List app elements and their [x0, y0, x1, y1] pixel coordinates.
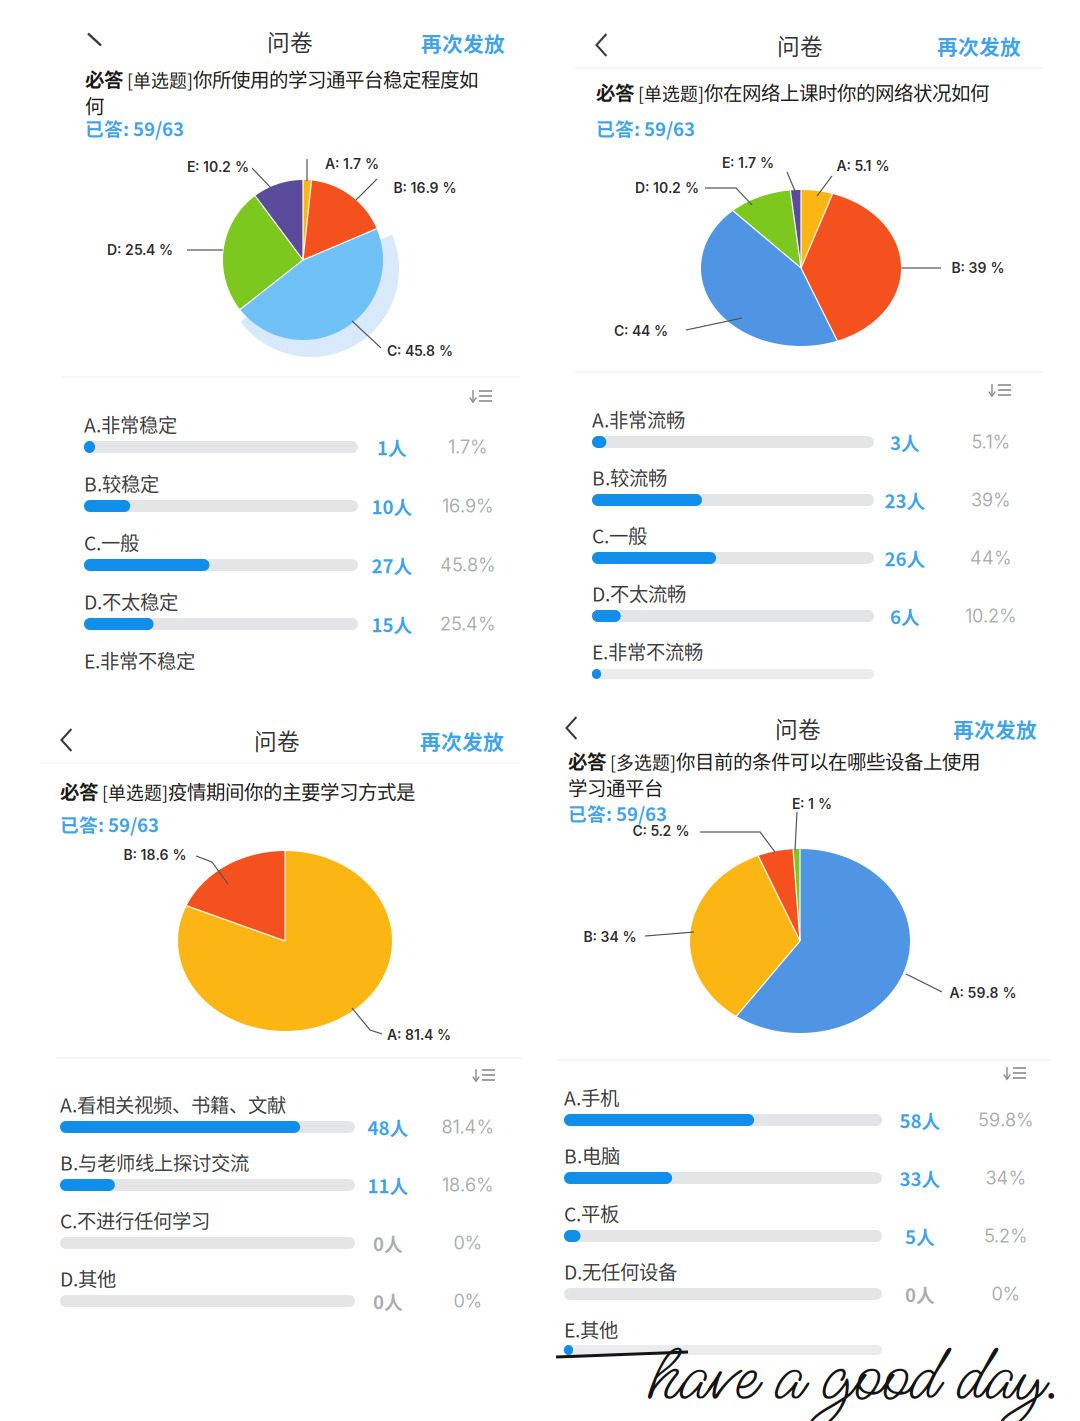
- staticText: E.非常不流畅: [592, 637, 703, 665]
- staticText: B.与老师线上探讨交流: [60, 1148, 249, 1176]
- staticText: C.一般: [84, 528, 139, 556]
- staticText: 26人: [884, 544, 925, 571]
- staticText: B: 16.9 %: [393, 179, 456, 196]
- staticText: 39%: [971, 489, 1011, 511]
- button[interactable]: Sort: [995, 1058, 1035, 1088]
- staticText: 48人: [367, 1113, 408, 1140]
- staticText: 18.6%: [442, 1174, 494, 1196]
- staticText: 45.8%: [440, 554, 496, 576]
- staticText: 33人: [899, 1164, 940, 1191]
- staticText: 34%: [985, 1167, 1026, 1189]
- staticText: 5人: [905, 1222, 935, 1249]
- staticText: 已答: 59/63: [596, 114, 695, 141]
- staticText: 44%: [970, 547, 1012, 569]
- staticText: C: 45.8 %: [387, 342, 453, 359]
- staticText: A.非常流畅: [592, 405, 685, 433]
- staticText: 问卷: [775, 712, 821, 744]
- staticText: 58人: [899, 1106, 940, 1133]
- staticText: B.电脑: [564, 1141, 620, 1169]
- staticText: 5.2%: [984, 1225, 1028, 1247]
- button[interactable]: Back: [586, 24, 617, 66]
- staticText: have a good day.: [649, 1323, 1061, 1421]
- staticText: D.不太稳定: [84, 587, 178, 615]
- staticText: 81.4%: [441, 1116, 494, 1138]
- staticText: D: 10.2 %: [635, 179, 699, 196]
- staticText: 1人: [377, 433, 407, 460]
- staticText: 再次发放: [953, 714, 1037, 744]
- staticText: B.较流畅: [592, 463, 667, 491]
- staticText: E: 1 %: [792, 795, 832, 812]
- staticText: D: 25.4 %: [107, 241, 173, 258]
- staticText: D.其他: [60, 1264, 116, 1292]
- staticText: 再次发放: [420, 726, 504, 756]
- staticText: B: 34 %: [583, 928, 636, 945]
- staticText: 再次发放: [421, 28, 505, 58]
- staticText: 已答: 59/63: [60, 810, 159, 837]
- staticText: A: 1.7 %: [325, 155, 379, 172]
- staticText: C.不进行任何学习: [60, 1206, 210, 1234]
- staticText: 已答: 59/63: [568, 799, 667, 826]
- staticText: 11人: [367, 1171, 408, 1198]
- staticText: 问卷: [267, 25, 313, 57]
- staticText: 27人: [371, 551, 412, 578]
- staticText: E: 1.7 %: [722, 154, 774, 171]
- staticText: C.平板: [564, 1199, 619, 1227]
- button[interactable]: Sort: [980, 375, 1020, 405]
- staticText: 5.1%: [971, 431, 1010, 453]
- button[interactable]: 再次发放: [953, 714, 1037, 744]
- button[interactable]: Back: [556, 707, 587, 749]
- staticText: 0%: [991, 1283, 1020, 1305]
- staticText: C: 5.2 %: [632, 822, 689, 839]
- button[interactable]: Back: [78, 23, 112, 56]
- staticText: A: 81.4 %: [387, 1026, 451, 1043]
- staticText: 3人: [890, 428, 920, 455]
- button[interactable]: Sort: [464, 1060, 504, 1090]
- staticText: B.较稳定: [84, 469, 159, 497]
- button[interactable]: Sort: [461, 381, 501, 411]
- staticText: A.非常稳定: [84, 410, 177, 438]
- staticText: 16.9%: [442, 495, 494, 517]
- staticText: E.非常不稳定: [84, 646, 195, 674]
- staticText: 0人: [373, 1229, 403, 1256]
- staticText: 10人: [371, 492, 412, 519]
- staticText: 10.2%: [965, 605, 1017, 627]
- staticText: A.手机: [564, 1083, 619, 1111]
- staticText: C: 44 %: [614, 322, 668, 339]
- staticText: C.一般: [592, 521, 647, 549]
- button[interactable]: 再次发放: [937, 31, 1021, 61]
- staticText: 0%: [453, 1290, 482, 1312]
- staticText: 59.8%: [978, 1109, 1034, 1131]
- staticText: 问卷: [254, 724, 300, 756]
- staticText: A.看相关视频、书籍、文献: [60, 1090, 286, 1118]
- staticText: 23人: [884, 486, 925, 513]
- button[interactable]: 再次发放: [421, 28, 505, 58]
- staticText: 已答: 59/63: [85, 114, 184, 141]
- staticText: 0人: [373, 1287, 403, 1314]
- staticText: 0%: [453, 1232, 482, 1254]
- staticText: A: 59.8 %: [949, 984, 1016, 1001]
- button[interactable]: Back: [51, 719, 82, 761]
- staticText: 1.7%: [448, 436, 488, 458]
- staticText: E: 10.2 %: [187, 158, 249, 175]
- staticText: 25.4%: [440, 613, 496, 635]
- staticText: E.其他: [564, 1315, 618, 1343]
- staticText: 6人: [890, 602, 920, 629]
- button[interactable]: 再次发放: [420, 726, 504, 756]
- staticText: 再次发放: [937, 31, 1021, 61]
- staticText: 必答 [单选题]疫情期间你的主要学习方式是: [60, 777, 415, 805]
- staticText: D.无任何设备: [564, 1257, 677, 1285]
- staticText: B: 39 %: [951, 259, 1004, 276]
- staticText: 必答 [单选题]你所使用的学习通平台稳定程度如何: [85, 65, 478, 119]
- staticText: 必答 [多选题]你目前的条件可以在哪些设备上使用学习通平台: [568, 747, 980, 801]
- staticText: 15人: [371, 610, 412, 637]
- staticText: A: 5.1 %: [836, 157, 889, 174]
- staticText: D.不太流畅: [592, 579, 686, 607]
- staticText: 必答 [单选题]你在网络上课时你的网络状况如何: [596, 78, 989, 106]
- staticText: 0人: [905, 1280, 935, 1307]
- staticText: 问卷: [777, 29, 823, 61]
- staticText: B: 18.6 %: [123, 846, 186, 863]
